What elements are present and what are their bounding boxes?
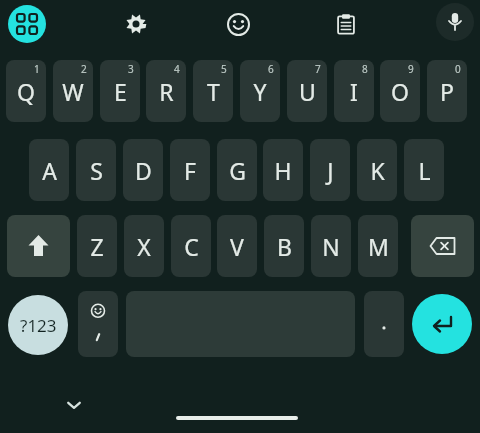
staticText: Z bbox=[90, 231, 104, 262]
button[interactable]: C bbox=[171, 215, 211, 277]
staticText: X bbox=[137, 231, 151, 262]
staticText: D bbox=[135, 155, 152, 186]
button[interactable]: X bbox=[124, 215, 164, 277]
button[interactable]: V bbox=[217, 215, 257, 277]
staticText: 4 bbox=[174, 62, 180, 76]
staticText: ?123 bbox=[20, 314, 57, 337]
staticText: G bbox=[229, 155, 246, 186]
button[interactable]: K bbox=[357, 139, 397, 201]
staticText: 3 bbox=[128, 62, 134, 76]
staticText: 9 bbox=[408, 62, 414, 76]
button[interactable]: ?123 bbox=[8, 295, 68, 355]
button[interactable]: S bbox=[76, 139, 116, 201]
staticText: E bbox=[114, 76, 127, 107]
staticText: 8 bbox=[362, 62, 368, 76]
staticText: F bbox=[184, 155, 196, 186]
button[interactable]: D bbox=[123, 139, 163, 201]
staticText: S bbox=[90, 155, 103, 186]
staticText: T bbox=[207, 76, 220, 107]
button[interactable]: Y bbox=[240, 60, 280, 122]
button[interactable]: A bbox=[29, 139, 69, 201]
staticText: B bbox=[277, 231, 292, 262]
button[interactable] bbox=[364, 291, 404, 357]
button[interactable]: R bbox=[146, 60, 186, 122]
button[interactable]: T bbox=[193, 60, 233, 122]
button[interactable]: Q bbox=[6, 60, 46, 122]
staticText: R bbox=[159, 76, 174, 107]
button[interactable]: Clipboard bbox=[327, 5, 365, 43]
button[interactable]: B bbox=[264, 215, 304, 277]
staticText: A bbox=[42, 155, 57, 186]
staticText: I bbox=[350, 76, 358, 107]
button[interactable]: P bbox=[427, 60, 467, 122]
button[interactable]: L bbox=[404, 139, 444, 201]
button[interactable]: Emoji and comma bbox=[78, 291, 118, 357]
staticText: V bbox=[230, 231, 244, 262]
button[interactable]: Toolbox bbox=[8, 5, 46, 43]
button[interactable]: I bbox=[334, 60, 374, 122]
staticText: L bbox=[418, 155, 431, 186]
staticText: 2 bbox=[81, 62, 87, 76]
staticText: 1 bbox=[34, 62, 40, 76]
staticText: Q bbox=[17, 76, 35, 107]
staticText: J bbox=[327, 155, 334, 186]
button[interactable]: G bbox=[217, 139, 257, 201]
button[interactable]: Voice input bbox=[436, 3, 474, 41]
button[interactable]: E bbox=[100, 60, 140, 122]
button[interactable]: M bbox=[358, 215, 398, 277]
button[interactable]: Backspace bbox=[411, 215, 474, 277]
staticText: C bbox=[184, 231, 199, 262]
staticText: Y bbox=[253, 76, 267, 107]
button[interactable]: F bbox=[170, 139, 210, 201]
button[interactable]: N bbox=[311, 215, 351, 277]
staticText: K bbox=[370, 155, 385, 186]
button[interactable]: J bbox=[310, 139, 350, 201]
button[interactable]: Emoji bbox=[219, 5, 257, 43]
button[interactable]: U bbox=[287, 60, 327, 122]
staticText: W bbox=[62, 76, 84, 107]
button[interactable]: Settings bbox=[117, 5, 155, 43]
staticText: 7 bbox=[315, 62, 321, 76]
button[interactable]: W bbox=[53, 60, 93, 122]
staticText: 0 bbox=[455, 62, 461, 76]
staticText: P bbox=[440, 76, 454, 107]
button[interactable]: Shift bbox=[7, 215, 70, 277]
staticText: H bbox=[274, 155, 292, 186]
staticText: M bbox=[368, 231, 389, 262]
button[interactable]: Z bbox=[77, 215, 117, 277]
staticText: 5 bbox=[221, 62, 227, 76]
button[interactable]: H bbox=[263, 139, 303, 201]
button[interactable]: O bbox=[380, 60, 420, 122]
staticText: N bbox=[322, 231, 340, 262]
staticText: U bbox=[299, 76, 316, 107]
staticText: 6 bbox=[268, 62, 274, 76]
button[interactable]: Hide keyboard bbox=[57, 388, 91, 422]
staticText: O bbox=[391, 76, 409, 107]
button[interactable]: Enter bbox=[412, 294, 472, 354]
